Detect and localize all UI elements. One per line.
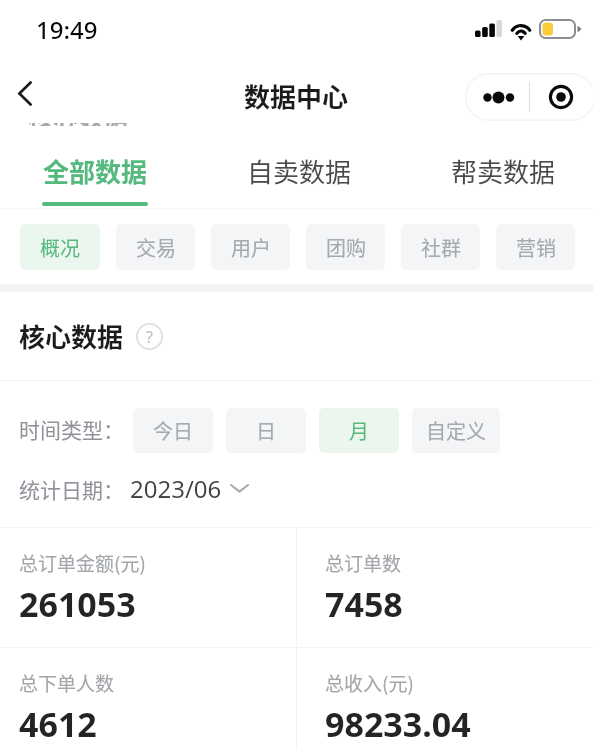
staticText: 交易 bbox=[136, 233, 176, 262]
staticText: 4612 bbox=[19, 701, 97, 747]
staticText: 社群 bbox=[421, 233, 461, 262]
staticText: ? bbox=[146, 326, 153, 348]
staticText: 用户 bbox=[231, 233, 271, 262]
staticText: 总收入(元) bbox=[325, 669, 414, 697]
button[interactable]: 自定义 bbox=[412, 408, 500, 453]
staticText: 自卖数据 bbox=[247, 152, 352, 190]
button[interactable]: Record bbox=[530, 73, 590, 121]
button[interactable]: 概况 bbox=[20, 224, 100, 270]
staticText: 总下单人数 bbox=[19, 669, 115, 697]
staticText: 核心数据 bbox=[28, 123, 129, 126]
staticText: 总订单数 bbox=[325, 549, 402, 577]
staticText: 月 bbox=[349, 416, 369, 445]
button[interactable]: 日 bbox=[226, 408, 306, 453]
button[interactable]: 帮卖数据 bbox=[418, 126, 588, 208]
staticText: 261053 bbox=[19, 581, 136, 627]
button[interactable]: 营销 bbox=[496, 224, 575, 270]
button[interactable]: Back bbox=[2, 70, 48, 116]
button[interactable]: 社群 bbox=[401, 224, 480, 270]
staticText: 98233.04 bbox=[325, 701, 471, 747]
staticText: 数据中心 bbox=[244, 77, 349, 115]
button[interactable]: 总订单数 bbox=[297, 528, 593, 647]
staticText: 时间类型： bbox=[19, 414, 124, 444]
staticText: 团购 bbox=[326, 233, 366, 262]
button[interactable]: 2023/06 bbox=[130, 472, 249, 505]
button[interactable]: 自卖数据 bbox=[214, 126, 384, 208]
button[interactable]: 全部数据 bbox=[10, 126, 180, 208]
staticText: 概况 bbox=[40, 233, 80, 262]
button[interactable]: 交易 bbox=[116, 224, 195, 270]
button[interactable]: 团购 bbox=[306, 224, 385, 270]
button[interactable]: Help bbox=[136, 323, 163, 350]
button[interactable]: 今日 bbox=[133, 408, 213, 453]
button[interactable]: 总订单金额(元) bbox=[0, 528, 296, 647]
staticText: 19:49 bbox=[36, 13, 98, 46]
button[interactable]: 总收入(元) bbox=[297, 648, 593, 749]
staticText: 全部数据 bbox=[43, 152, 148, 190]
button[interactable]: 用户 bbox=[211, 224, 290, 270]
staticText: 7458 bbox=[325, 581, 403, 627]
staticText: 总订单金额(元) bbox=[19, 549, 146, 577]
staticText: 帮卖数据 bbox=[451, 152, 556, 190]
staticText: 今日 bbox=[153, 416, 193, 445]
staticText: 2023/06 bbox=[130, 472, 222, 505]
staticText: 营销 bbox=[516, 233, 556, 262]
button[interactable]: 总下单人数 bbox=[0, 648, 296, 749]
staticText: 日 bbox=[256, 416, 276, 445]
button[interactable]: More options bbox=[465, 73, 529, 121]
staticText: 核心数据 bbox=[19, 317, 124, 355]
staticText: 自定义 bbox=[426, 416, 486, 445]
staticText: 统计日期： bbox=[19, 474, 124, 504]
button[interactable]: 月 bbox=[319, 408, 399, 453]
